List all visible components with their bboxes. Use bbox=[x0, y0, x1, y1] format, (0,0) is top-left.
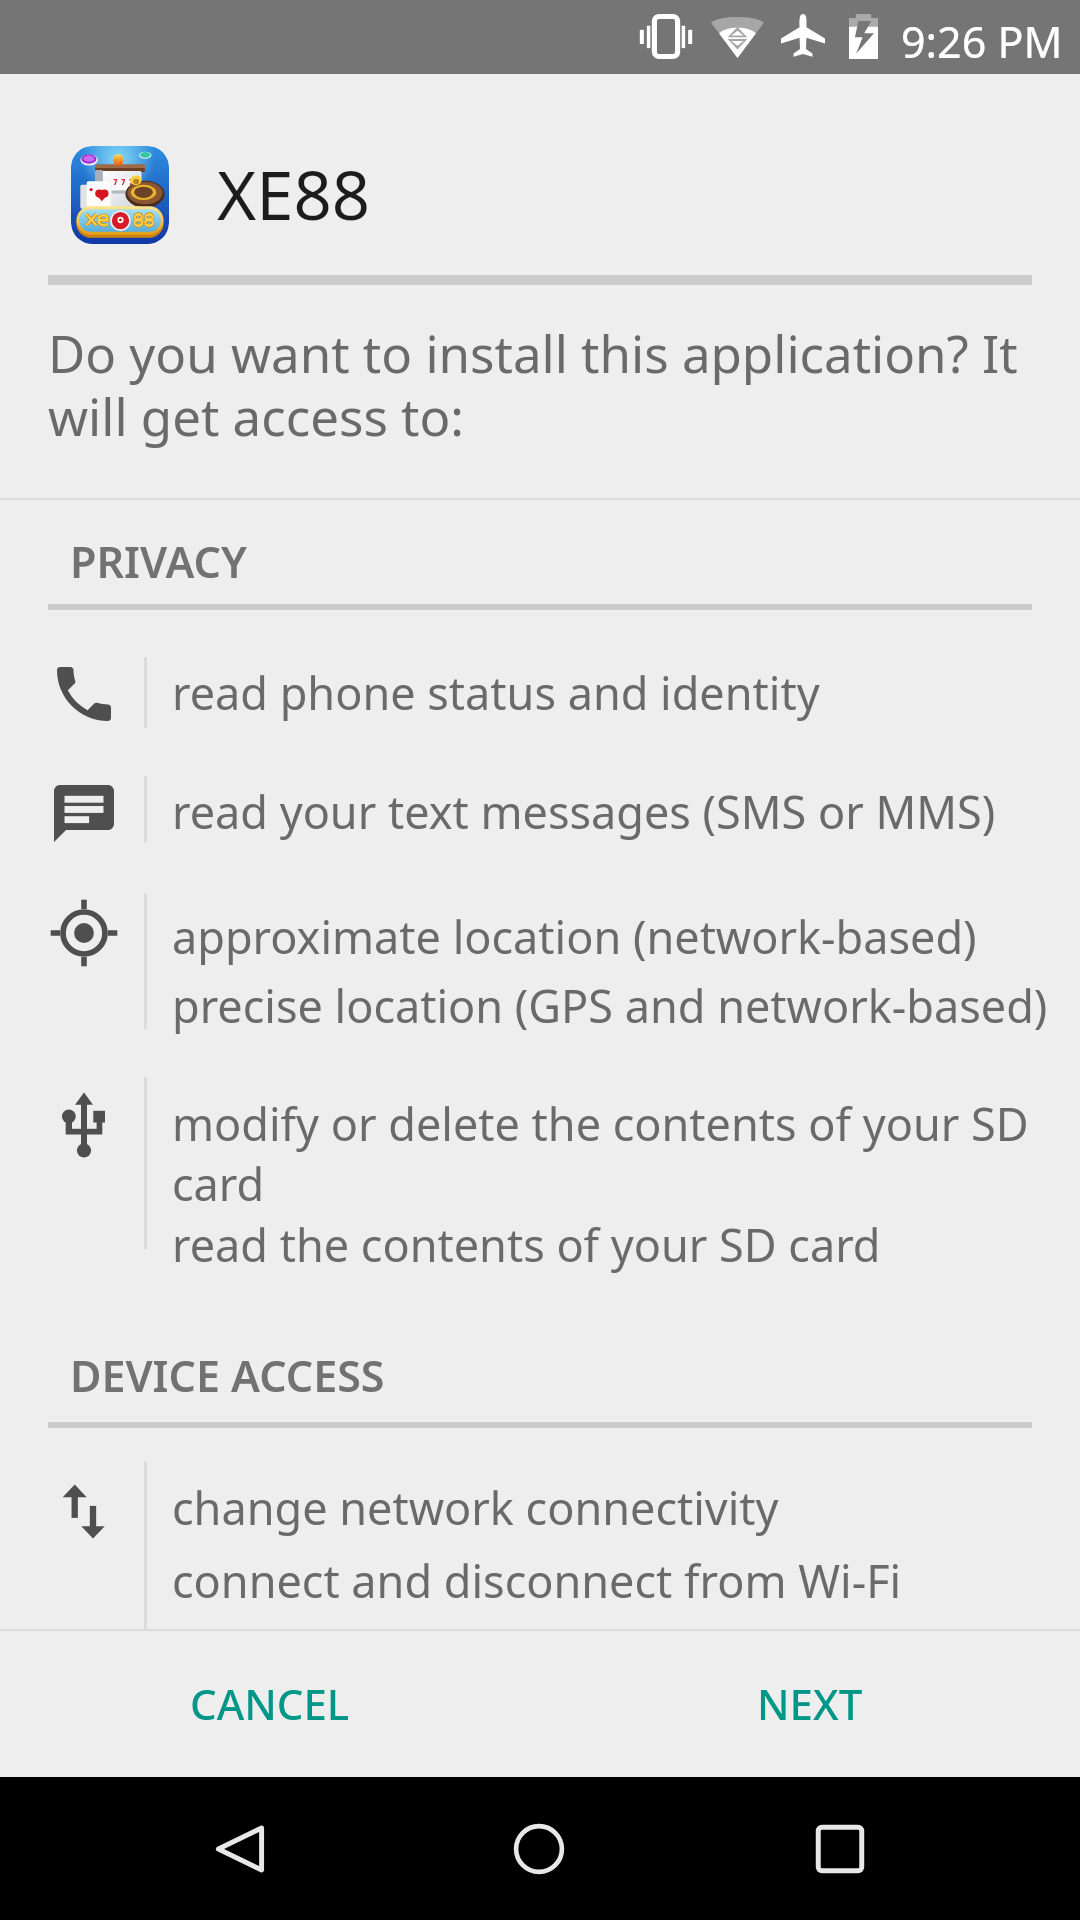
button[interactable]: Back bbox=[168, 1777, 312, 1920]
button[interactable]: Home bbox=[467, 1777, 611, 1920]
staticText: DEVICE ACCESS bbox=[70, 1346, 385, 1405]
button[interactable]: Recent apps bbox=[768, 1777, 912, 1920]
staticText: precise location (GPS and network-based) bbox=[172, 976, 1048, 1036]
staticText: NEXT bbox=[757, 1675, 863, 1732]
staticText: CANCEL bbox=[190, 1675, 350, 1732]
staticText: read your text messages (SMS or MMS) bbox=[172, 782, 996, 842]
button[interactable]: NEXT bbox=[540, 1631, 1080, 1775]
staticText: XE88 bbox=[217, 148, 371, 239]
staticText: read the contents of your SD card bbox=[172, 1215, 881, 1275]
staticText: Do you want to install this application?… bbox=[48, 318, 1032, 451]
staticText: PRIVACY bbox=[70, 532, 247, 591]
staticText: connect and disconnect from Wi-Fi bbox=[172, 1551, 902, 1611]
staticText: change network connectivity bbox=[172, 1478, 779, 1538]
button[interactable]: CANCEL bbox=[0, 1631, 540, 1775]
staticText: 9:26 PM bbox=[901, 12, 1063, 71]
staticText: modify or delete the contents of your SD… bbox=[172, 1094, 1060, 1214]
staticText: approximate location (network-based) bbox=[172, 907, 977, 967]
staticText: read phone status and identity bbox=[172, 663, 820, 723]
